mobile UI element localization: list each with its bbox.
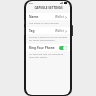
staticText: Choose a tag so it can be Chipped for fa… — [29, 35, 67, 41]
button[interactable]: Tag — [26, 27, 70, 34]
button[interactable]: Ring Your Phone — [26, 44, 70, 51]
staticText: Wallet — [55, 29, 64, 33]
staticText: CAPSULE SETTINGS — [34, 6, 63, 10]
button[interactable]: Name — [26, 13, 70, 20]
staticText: An alert will ring on Capsule to ring yo… — [29, 52, 67, 58]
staticText: Name — [29, 15, 39, 19]
staticText: Wallet — [55, 15, 64, 19]
button[interactable]: Ring Your Phone toggle — [59, 46, 67, 50]
staticText: The name of your Capsule. — [29, 21, 59, 24]
staticText: 9:41 — [29, 2, 34, 5]
staticText: Ring Your Phone — [29, 46, 55, 50]
staticText: Tag — [29, 29, 35, 33]
